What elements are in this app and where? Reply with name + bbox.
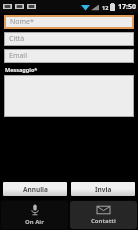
staticText: 12 <box>102 4 109 11</box>
staticText: On Air <box>25 218 44 226</box>
button[interactable]: On Air <box>1 201 68 229</box>
staticText: Contatti <box>91 217 116 225</box>
staticText: Email <box>9 51 27 61</box>
staticText: Nome* <box>10 17 34 27</box>
staticText: 17:50 <box>118 2 136 12</box>
staticText: Messaggio* <box>5 66 38 73</box>
button[interactable]: Contatti <box>70 201 137 229</box>
button[interactable]: Invia <box>71 182 135 196</box>
button[interactable]: Città <box>5 33 133 45</box>
staticText: Invia <box>95 185 112 194</box>
button[interactable]: Annulla <box>3 182 67 196</box>
staticText: Annulla <box>23 185 48 194</box>
button[interactable]: Nome* <box>6 17 132 27</box>
button[interactable]: Email <box>5 50 133 62</box>
staticText: Città <box>9 34 25 44</box>
